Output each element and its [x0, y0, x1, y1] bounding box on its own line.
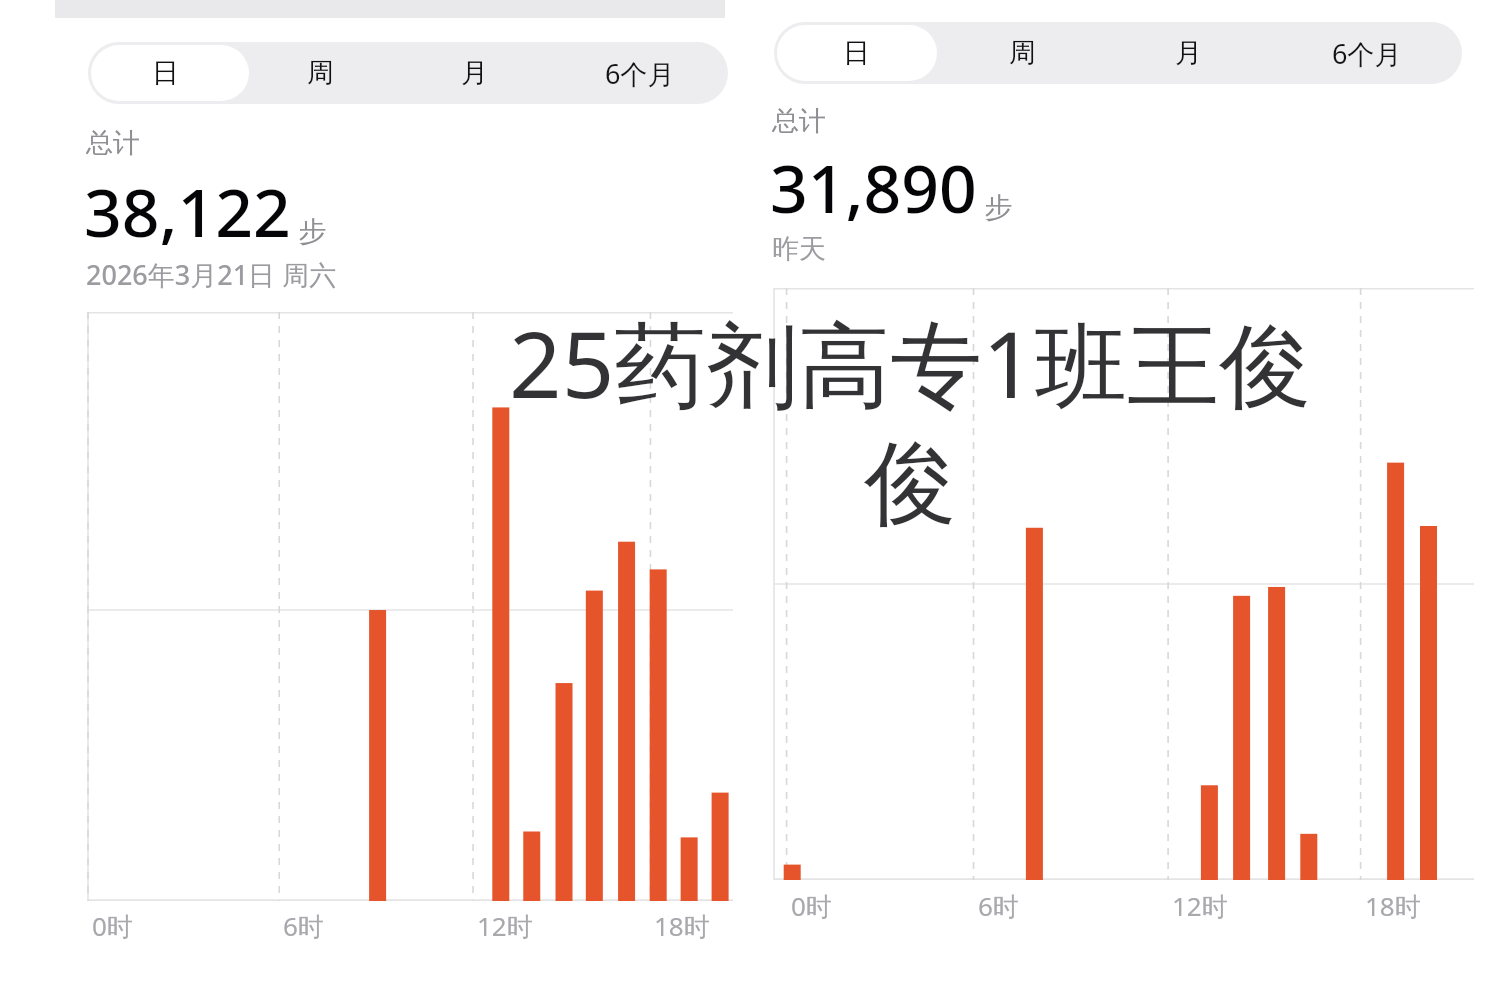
button[interactable]: 日: [88, 42, 243, 104]
staticText: 38,122: [84, 166, 291, 256]
staticText: 0时: [791, 888, 832, 924]
staticText: 周: [1009, 36, 1036, 70]
staticText: 昨天: [772, 232, 826, 266]
staticText: 6个月: [605, 55, 675, 92]
staticText: 日: [152, 56, 179, 90]
staticText: 月: [461, 56, 488, 90]
button[interactable]: [91, 45, 249, 101]
staticText: 6时: [978, 888, 1019, 924]
staticText: 0时: [92, 908, 133, 944]
button[interactable]: 月: [397, 42, 551, 104]
staticText: 步: [291, 211, 327, 249]
staticText: 6时: [283, 908, 324, 944]
button[interactable]: 周: [939, 22, 1105, 84]
button[interactable]: 日: [774, 22, 939, 84]
staticText: 18时: [654, 908, 710, 944]
staticText: 日: [843, 36, 870, 70]
button[interactable]: 月: [1105, 22, 1271, 84]
staticText: 俊: [864, 426, 956, 542]
button[interactable]: 周: [243, 42, 397, 104]
staticText: 总计: [772, 104, 826, 138]
button[interactable]: [777, 25, 937, 81]
staticText: 步: [977, 187, 1013, 225]
staticText: 6个月: [1332, 35, 1402, 72]
staticText: 25药剂高专1班王俊: [509, 300, 1311, 426]
staticText: 总计: [86, 126, 140, 160]
staticText: 2026年3月21日 周六: [86, 256, 337, 293]
staticText: 12时: [1172, 888, 1228, 924]
staticText: 31,890: [770, 142, 977, 232]
staticText: 18时: [1365, 888, 1421, 924]
staticText: 周: [307, 56, 334, 90]
staticText: 月: [1175, 36, 1202, 70]
staticText: 12时: [477, 908, 533, 944]
button[interactable]: 6个月: [551, 42, 728, 104]
button[interactable]: 6个月: [1271, 22, 1462, 84]
